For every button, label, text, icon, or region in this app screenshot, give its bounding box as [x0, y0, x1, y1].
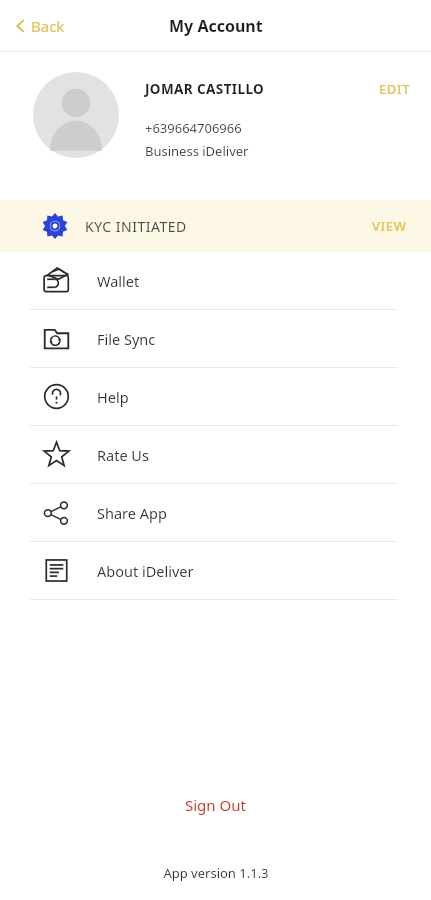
staticText: Sign Out [185, 795, 246, 815]
button[interactable]: Rate Us [0, 426, 431, 483]
button[interactable]: Wallet [0, 252, 431, 309]
staticText: VIEW [372, 217, 407, 235]
staticText: Business iDeliver [145, 142, 249, 160]
staticText: EDIT [379, 80, 411, 98]
button[interactable]: KYC INITIATED [0, 200, 431, 252]
button[interactable]: About iDeliver [0, 542, 431, 599]
button[interactable]: Share App [0, 484, 431, 541]
button[interactable]: EDIT [371, 74, 419, 104]
staticText: My Account [169, 15, 263, 37]
staticText: Wallet [97, 271, 140, 291]
button[interactable]: Sign Out [44, 782, 387, 828]
staticText: KYC INITIATED [85, 217, 187, 236]
staticText: Back [31, 16, 65, 36]
staticText: Share App [97, 503, 167, 523]
staticText: App version 1.1.3 [163, 864, 269, 882]
button[interactable]: File Sync [0, 310, 431, 367]
staticText: Rate Us [97, 445, 149, 465]
staticText: +639664706966 [145, 119, 242, 137]
staticText: Help [97, 387, 129, 407]
staticText: JOMAR CASTILLO [145, 80, 265, 98]
staticText: About iDeliver [97, 561, 194, 581]
button[interactable]: Help [0, 368, 431, 425]
staticText: File Sync [97, 329, 156, 349]
button[interactable]: Back [10, 10, 71, 42]
